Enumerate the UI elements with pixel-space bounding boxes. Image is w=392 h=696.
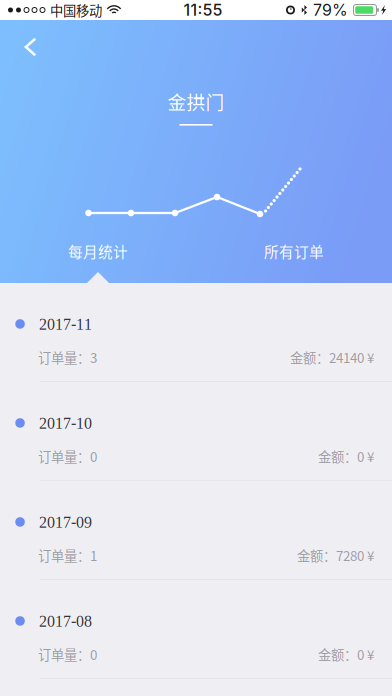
- staticText: 订单量：0: [38, 644, 97, 664]
- staticText: 79%: [313, 0, 348, 20]
- button[interactable]: Back: [13, 25, 57, 69]
- staticText: 订单量：0: [38, 446, 97, 466]
- staticText: 金额：0 ¥: [318, 644, 374, 664]
- button[interactable]: 每月统计: [0, 232, 196, 270]
- staticText: 所有订单: [264, 240, 324, 262]
- button[interactable]: 所有订单: [196, 232, 392, 270]
- staticText: 中国移动: [50, 0, 102, 20]
- staticText: 11:55: [183, 0, 222, 20]
- staticText: 2017-08: [39, 612, 92, 630]
- staticText: 每月统计: [68, 240, 128, 262]
- button[interactable]: 2017-11: [0, 283, 392, 382]
- staticText: 金额：0 ¥: [318, 446, 374, 466]
- staticText: 2017-09: [39, 513, 92, 531]
- staticText: 金拱门: [167, 87, 224, 114]
- button[interactable]: 2017-09: [0, 481, 392, 580]
- staticText: 金额：7280 ¥: [297, 545, 374, 565]
- staticText: 2017-10: [39, 414, 92, 432]
- staticText: 2017-11: [39, 315, 92, 333]
- button[interactable]: 2017-10: [0, 382, 392, 481]
- staticText: 订单量：1: [38, 545, 97, 565]
- button[interactable]: 2017-08: [0, 580, 392, 679]
- staticText: 金额：24140 ¥: [290, 347, 374, 367]
- staticText: 订单量：3: [38, 347, 97, 367]
